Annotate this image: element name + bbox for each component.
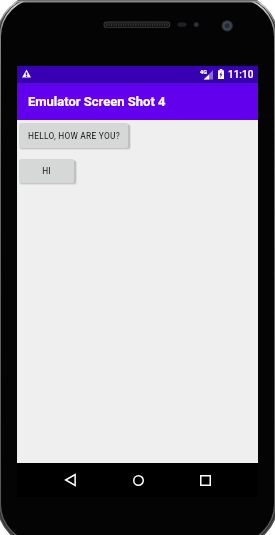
staticText: HI — [42, 166, 51, 176]
staticText: Emulator Screen Shot 4 — [28, 94, 166, 109]
button[interactable]: Home — [123, 465, 153, 495]
staticText: 11:10 — [228, 69, 254, 81]
button[interactable]: Recents — [190, 465, 220, 495]
button[interactable]: HELLO, HOW ARE YOU? — [19, 123, 128, 148]
staticText: HELLO, HOW ARE YOU? — [28, 131, 120, 141]
staticText: 4G — [200, 69, 207, 75]
button[interactable]: Back — [55, 465, 85, 495]
button[interactable]: HI — [19, 159, 74, 183]
